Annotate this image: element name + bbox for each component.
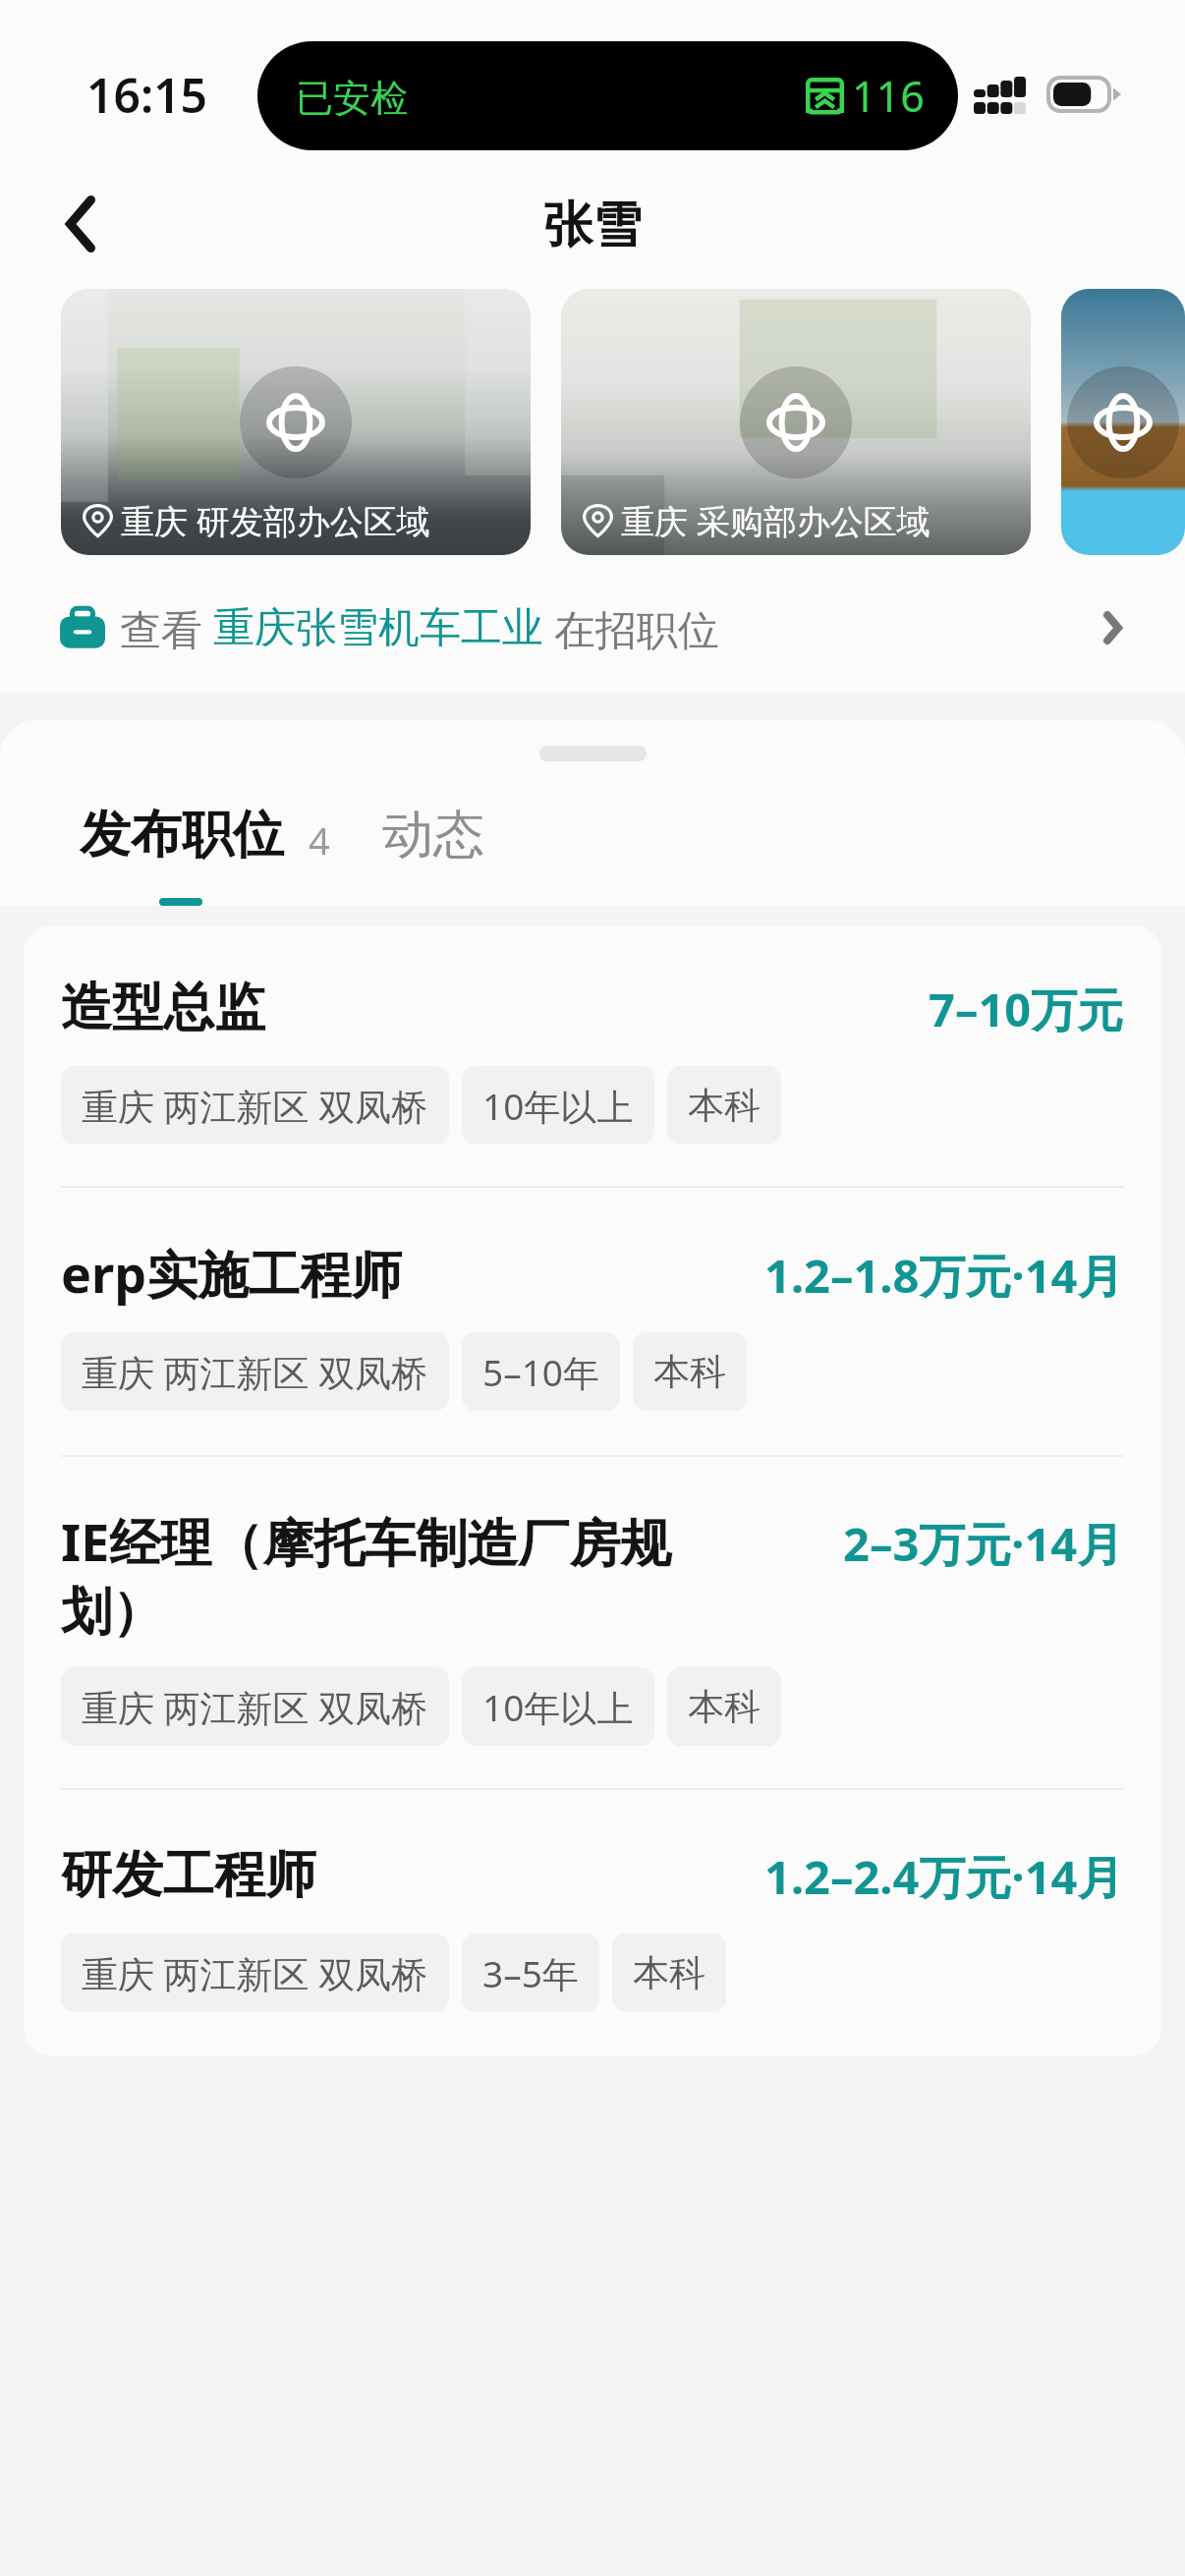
staticText: 重庆 研发部办公区域 [121, 498, 430, 543]
staticText: 5–10年 [482, 1347, 599, 1397]
staticText: 重庆 采购部办公区域 [621, 498, 931, 543]
button[interactable]: 动态 [382, 801, 484, 869]
staticText: 本科 [633, 1950, 705, 1996]
button[interactable]: 发布职位 [80, 801, 330, 869]
staticText: 本科 [653, 1349, 726, 1395]
staticText: 研发工程师 [61, 1842, 316, 1909]
staticText: 查看 [120, 600, 213, 656]
staticText: 重庆张雪机车工业 [213, 602, 543, 654]
button[interactable]: erp实施工程师 [61, 1188, 1124, 1455]
button[interactable]: 重庆 研发部办公区域 [61, 289, 531, 555]
staticText: 1.2–2.4万元·14月 [764, 1842, 1124, 1912]
staticText: 已安检 [296, 70, 408, 125]
button[interactable]: 查看 [0, 555, 1185, 693]
staticText: 3–5年 [482, 1948, 579, 1998]
staticText: 1.2–1.8万元·14月 [764, 1241, 1124, 1311]
staticText: 在招职位 [543, 600, 719, 656]
button[interactable]: IE经理（摩托车制造厂房规 划） [61, 1457, 1124, 1788]
staticText: 张雪 [543, 194, 642, 258]
staticText: 16:15 [86, 63, 208, 127]
staticText: 本科 [688, 1083, 761, 1129]
staticText: 4 [309, 801, 330, 869]
staticText: 2–3万元·14月 [843, 1509, 1124, 1579]
staticText: IE经理（摩托车制造厂房规 划） [61, 1509, 672, 1646]
staticText: erp实施工程师 [61, 1241, 403, 1311]
staticText: 重庆 两江新区 双凤桥 [82, 1347, 428, 1397]
staticText: 116 [852, 69, 925, 124]
staticText: 造型总监 [61, 975, 265, 1041]
staticText: 重庆 两江新区 双凤桥 [82, 1081, 428, 1131]
staticText: 重庆 两江新区 双凤桥 [82, 1948, 428, 1998]
staticText: 7–10万元 [929, 975, 1124, 1044]
button[interactable]: 研发工程师 [61, 1790, 1124, 2055]
button[interactable]: 造型总监 [61, 925, 1124, 1186]
button[interactable]: Back [35, 179, 126, 269]
staticText: 10年以上 [482, 1081, 634, 1131]
staticText: 重庆 两江新区 双凤桥 [82, 1682, 428, 1732]
staticText: 10年以上 [482, 1682, 634, 1732]
staticText: 本科 [688, 1684, 761, 1730]
button[interactable] [1061, 289, 1185, 555]
button[interactable]: 重庆 采购部办公区域 [561, 289, 1031, 555]
staticText: 发布职位 [80, 801, 284, 869]
